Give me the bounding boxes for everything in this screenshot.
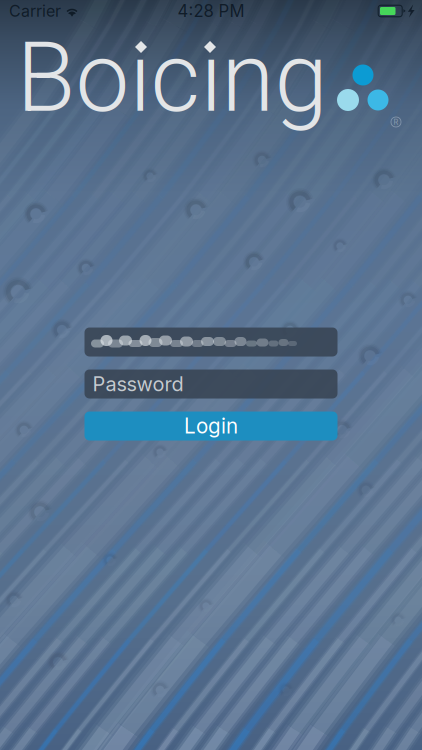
button[interactable]: Password [84,369,337,398]
button[interactable]: Username [84,327,337,356]
staticText: Boıcıng [16,22,327,134]
staticText: 4:28 PM [177,1,244,21]
staticText: Password [92,372,183,396]
staticText: R [393,118,398,126]
staticText: Carrier [9,1,61,21]
button[interactable]: Login [84,411,337,440]
staticText: Login [184,413,238,438]
